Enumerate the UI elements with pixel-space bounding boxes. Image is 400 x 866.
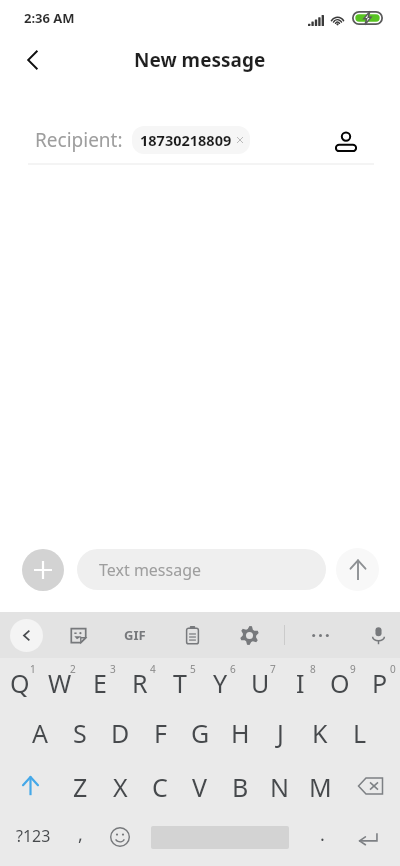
- button[interactable]: GIF: [118, 618, 152, 652]
- button[interactable]: .: [304, 812, 340, 866]
- staticText: ?123: [16, 825, 51, 847]
- staticText: 4: [150, 662, 156, 676]
- staticText: A: [32, 716, 48, 750]
- button[interactable]: A: [20, 709, 60, 759]
- staticText: 7: [270, 662, 276, 676]
- staticText: 2: [70, 662, 76, 676]
- staticText: X: [113, 770, 128, 804]
- button[interactable]: M: [300, 759, 340, 812]
- button[interactable]: H: [220, 709, 260, 759]
- button[interactable]: Attach: [22, 549, 64, 591]
- button[interactable]: Settings: [232, 618, 266, 652]
- staticText: 1: [30, 662, 36, 676]
- button[interactable]: Back: [11, 41, 49, 79]
- staticText: ,: [78, 822, 83, 847]
- staticText: B: [232, 770, 249, 804]
- staticText: H: [231, 716, 250, 750]
- button[interactable]: E: [80, 658, 120, 709]
- staticText: C: [152, 770, 168, 804]
- button[interactable]: Clipboard: [175, 618, 209, 652]
- button[interactable]: Text message: [77, 549, 326, 590]
- button[interactable]: K: [300, 709, 340, 759]
- staticText: O: [330, 666, 350, 700]
- staticText: V: [192, 770, 208, 804]
- staticText: L: [353, 716, 367, 750]
- button[interactable]: P: [360, 658, 400, 709]
- button[interactable]: ?123: [6, 812, 60, 866]
- button[interactable]: Emoji: [103, 812, 137, 866]
- staticText: F: [154, 716, 167, 750]
- button[interactable]: D: [100, 709, 140, 759]
- button[interactable]: More options: [303, 618, 337, 652]
- button[interactable]: Y: [200, 658, 240, 709]
- button[interactable]: N: [260, 759, 300, 812]
- staticText: P: [372, 666, 388, 700]
- staticText: N: [270, 770, 290, 804]
- button[interactable]: Shift: [0, 759, 60, 812]
- staticText: K: [312, 716, 328, 750]
- button[interactable]: S: [60, 709, 100, 759]
- staticText: 8: [310, 662, 316, 676]
- button[interactable]: Z: [60, 759, 100, 812]
- staticText: .: [320, 822, 325, 847]
- button[interactable]: W: [40, 658, 80, 709]
- staticText: 2:36 AM: [24, 9, 75, 27]
- button[interactable]: X: [100, 759, 140, 812]
- button[interactable]: B: [220, 759, 260, 812]
- staticText: GIF: [124, 626, 146, 644]
- button[interactable]: Backspace: [340, 759, 400, 812]
- staticText: M: [309, 770, 332, 804]
- button[interactable]: Send: [336, 548, 379, 591]
- button[interactable]: O: [320, 658, 360, 709]
- staticText: 0: [390, 662, 396, 676]
- button[interactable]: J: [260, 709, 300, 759]
- button[interactable]: Collapse toolbar: [10, 619, 43, 652]
- button[interactable]: T: [160, 658, 200, 709]
- staticText: R: [132, 666, 148, 700]
- staticText: Text message: [99, 559, 202, 581]
- button[interactable]: I: [280, 658, 320, 709]
- button[interactable]: Enter: [346, 812, 388, 866]
- button[interactable]: Voice input: [361, 618, 395, 652]
- staticText: 6: [230, 662, 236, 676]
- staticText: I: [296, 666, 305, 700]
- button[interactable]: F: [140, 709, 180, 759]
- button[interactable]: ,: [62, 812, 98, 866]
- staticText: U: [251, 666, 270, 700]
- staticText: G: [191, 716, 210, 750]
- button[interactable]: U: [240, 658, 280, 709]
- staticText: W: [48, 666, 72, 700]
- button[interactable]: R: [120, 658, 160, 709]
- staticText: E: [93, 666, 107, 700]
- staticText: D: [111, 716, 130, 750]
- button[interactable]: Q: [0, 658, 40, 709]
- button[interactable]: Contacts: [328, 122, 364, 158]
- button[interactable]: G: [180, 709, 220, 759]
- staticText: Y: [213, 666, 228, 700]
- staticText: T: [173, 666, 187, 700]
- staticText: 9: [350, 662, 356, 676]
- staticText: S: [73, 716, 87, 750]
- staticText: Q: [10, 666, 30, 700]
- button[interactable]: 18730218809: [132, 126, 250, 154]
- staticText: J: [277, 716, 284, 750]
- button[interactable]: C: [140, 759, 180, 812]
- staticText: 3: [110, 662, 116, 676]
- staticText: 18730218809: [140, 130, 232, 150]
- button[interactable]: Stickers: [61, 618, 95, 652]
- staticText: Recipient:: [35, 127, 123, 153]
- staticText: Z: [73, 770, 88, 804]
- staticText: 5: [190, 662, 196, 676]
- staticText: New message: [134, 47, 266, 73]
- button[interactable]: V: [180, 759, 220, 812]
- button[interactable]: L: [340, 709, 380, 759]
